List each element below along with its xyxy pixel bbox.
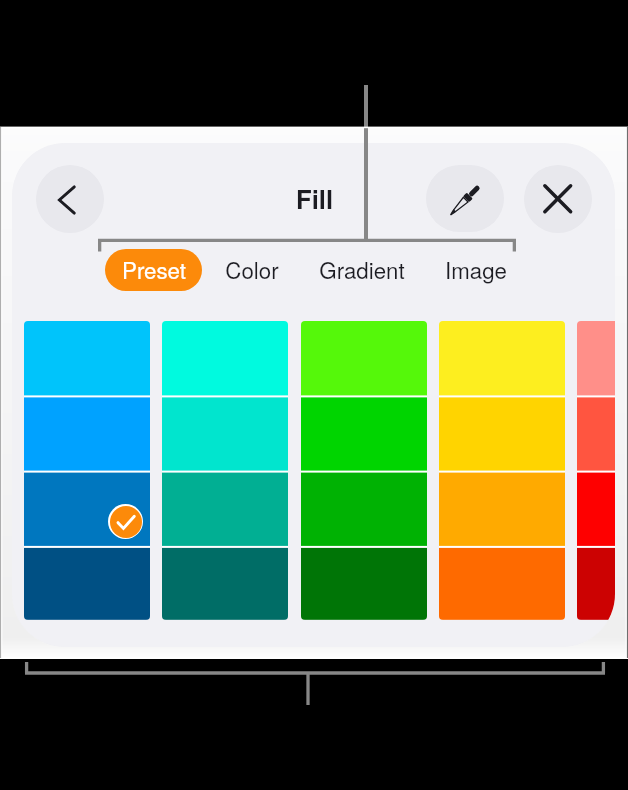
button[interactable]: Image [411, 249, 541, 291]
button[interactable] [439, 396, 565, 471]
staticText: Color [225, 253, 279, 285]
staticText: Fill [296, 180, 333, 217]
button[interactable]: Eyedropper [426, 165, 504, 232]
button[interactable] [439, 547, 565, 620]
button[interactable]: Preset [105, 249, 202, 291]
button[interactable]: Back [36, 165, 104, 233]
button[interactable] [301, 396, 427, 471]
button[interactable] [439, 471, 565, 546]
button[interactable]: Gradient [297, 249, 427, 291]
button[interactable] [577, 471, 615, 546]
button[interactable] [577, 396, 615, 471]
other: Selected colour [108, 504, 143, 539]
staticText: Gradient [319, 253, 405, 285]
button[interactable] [301, 321, 427, 396]
button[interactable]: Close [524, 165, 592, 233]
staticText: Preset [122, 253, 186, 285]
button[interactable] [24, 547, 150, 620]
button[interactable] [162, 471, 288, 546]
button[interactable] [301, 471, 427, 546]
button[interactable] [577, 547, 615, 620]
button[interactable] [24, 471, 150, 546]
button[interactable] [577, 321, 615, 396]
button[interactable]: Color [187, 249, 317, 291]
button[interactable] [24, 321, 150, 396]
staticText: Image [445, 253, 507, 285]
button[interactable] [162, 396, 288, 471]
button[interactable] [301, 547, 427, 620]
button[interactable] [162, 547, 288, 620]
button[interactable] [162, 321, 288, 396]
button[interactable] [439, 321, 565, 396]
button[interactable] [24, 396, 150, 471]
